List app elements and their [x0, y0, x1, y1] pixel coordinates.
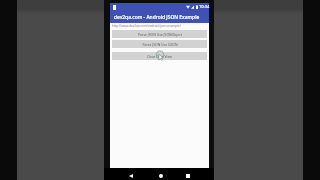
button[interactable]: Parse JSON Use GSON: [112, 40, 207, 48]
button[interactable]: Back: [126, 171, 136, 180]
staticText: 10:34: [199, 4, 210, 9]
button[interactable]: Home: [156, 171, 166, 180]
staticText: http://www.dev2qa.com/android-json-examp…: [112, 24, 181, 28]
staticText: Parse JSON Use GSON: [142, 42, 178, 47]
staticText: Clear Data View: [147, 54, 172, 59]
button[interactable]: Recent apps: [183, 171, 193, 180]
staticText: Parse JSON Use JSONObject: [138, 32, 182, 37]
button[interactable]: Clear Data View: [112, 52, 207, 60]
button[interactable]: Parse JSON Use JSONObject: [112, 30, 207, 38]
staticText: dev2qa.com - Android JSON Example: [114, 14, 200, 21]
